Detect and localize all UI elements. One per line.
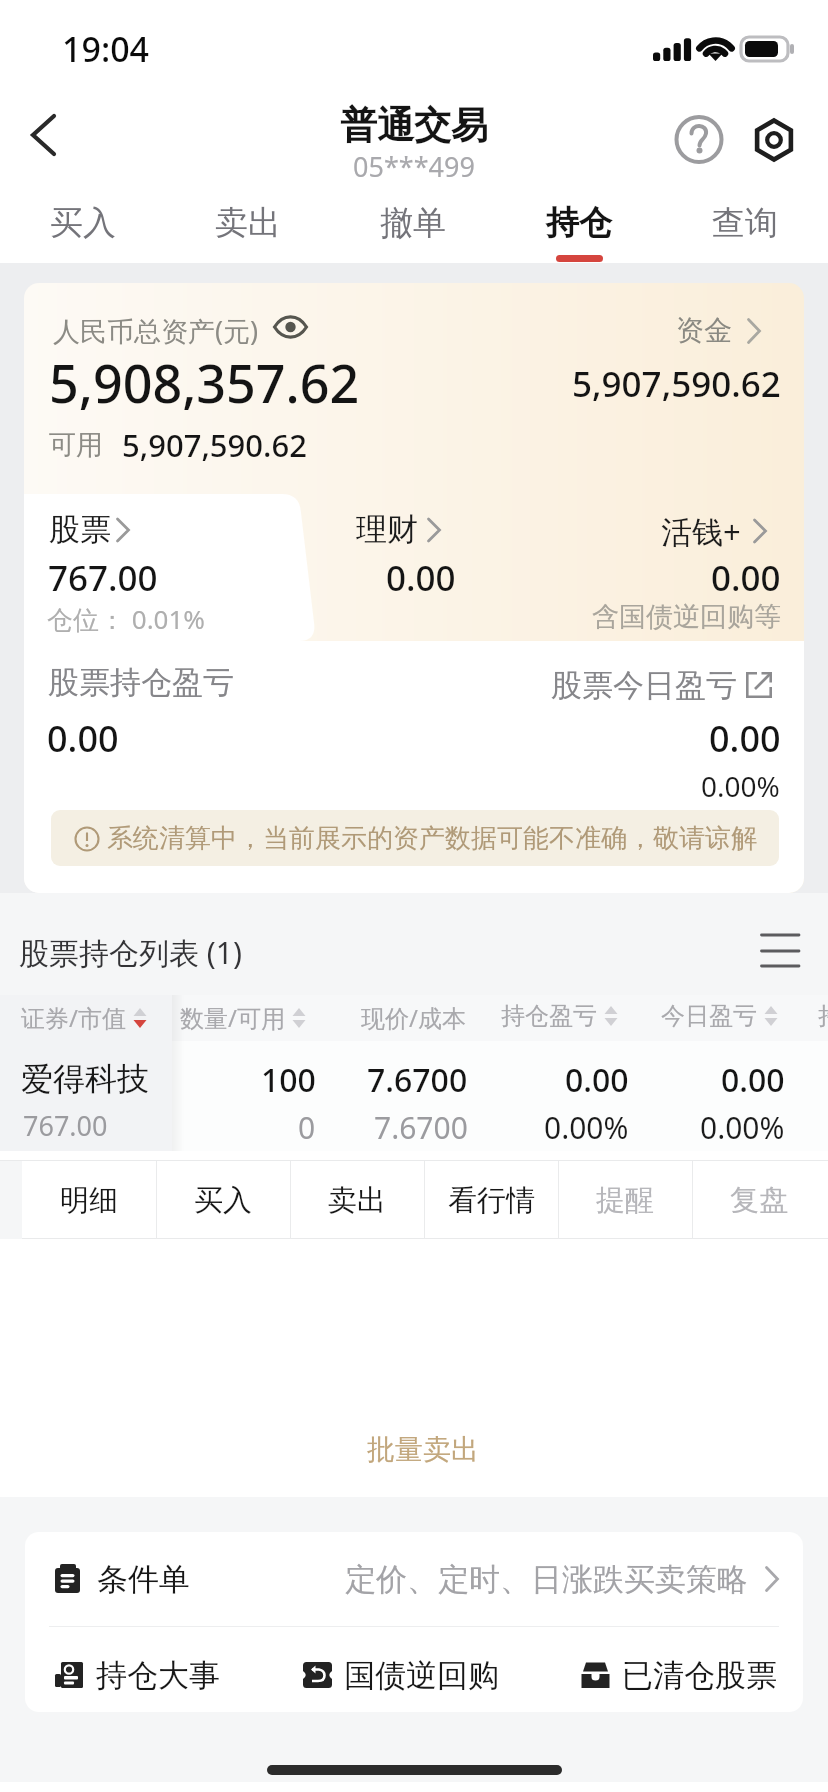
staticText: 7.6700 <box>367 1058 468 1102</box>
staticText: 0.00% <box>701 767 780 805</box>
button[interactable]: 卖出 <box>290 1161 424 1239</box>
staticText: 提醒 <box>596 1182 654 1219</box>
button[interactable]: 买入 <box>0 190 165 263</box>
staticText: 今日盈亏 <box>661 1001 757 1031</box>
staticText: 持仓大事 <box>96 1656 220 1695</box>
staticText: 定价、定时、日涨跌买卖策略 <box>345 1560 748 1599</box>
staticText: 查询 <box>712 202 778 244</box>
staticText: 0.00 <box>721 1058 785 1102</box>
staticText: 5,907,590.62 <box>122 424 307 466</box>
button[interactable]: 复盘 <box>692 1161 826 1239</box>
staticText: 19:04 <box>62 26 150 72</box>
button[interactable]: 看行情 <box>424 1161 558 1239</box>
staticText: 5,907,590.62 <box>572 360 781 408</box>
button[interactable]: Settings <box>744 110 804 170</box>
staticText: 持仓盈亏 <box>501 1001 597 1031</box>
staticText: 复盘 <box>730 1182 788 1219</box>
button[interactable]: 批量卖出 <box>9 1426 828 1472</box>
staticText: 股票 <box>49 510 111 549</box>
staticText: 05***499 <box>353 148 475 185</box>
staticText: 数量/可用 <box>180 1001 285 1034</box>
button[interactable]: 现价/成本 <box>361 1001 466 1034</box>
staticText: 卖出 <box>328 1182 386 1219</box>
staticText: 0.00 <box>565 1058 629 1102</box>
staticText: 撤单 <box>380 202 446 244</box>
staticText: 0.00% <box>544 1107 629 1148</box>
button[interactable]: 卖出 <box>165 190 330 263</box>
button[interactable]: Toggle balance visibility <box>273 315 309 340</box>
staticText: 0.00 <box>386 554 456 602</box>
staticText: 证券/市值 <box>21 1001 126 1034</box>
button[interactable]: 查询 <box>662 190 828 263</box>
button[interactable]: List options <box>748 918 812 984</box>
staticText: 0.00 <box>47 714 119 763</box>
staticText: 普通交易 <box>340 102 488 149</box>
staticText: 资金 <box>676 313 732 348</box>
staticText: 活钱+ <box>661 510 741 552</box>
staticText: 0.00 <box>711 554 781 602</box>
staticText: 含国债逆回购等 <box>592 600 781 634</box>
button[interactable]: 证券/市值 <box>21 1001 148 1034</box>
button[interactable]: 持仓 <box>496 190 662 263</box>
button[interactable]: 股票今日盈亏 <box>551 666 772 705</box>
staticText: 系统清算中，当前展示的资产数据可能不准确，敬请谅解 <box>107 822 757 855</box>
staticText: 100 <box>261 1058 316 1102</box>
button[interactable]: 持仓大事 <box>55 1656 220 1695</box>
button[interactable]: 买入 <box>156 1161 290 1239</box>
button[interactable]: 资金 <box>676 313 762 348</box>
staticText: 已清仓股票 <box>622 1656 777 1695</box>
staticText: 爱得科技 <box>21 1059 149 1099</box>
staticText: 767.00 <box>48 554 158 602</box>
staticText: 0 <box>298 1107 316 1148</box>
button[interactable]: 股票 <box>49 510 131 549</box>
button[interactable]: 已清仓股票 <box>581 1656 777 1695</box>
staticText: 股票持仓盈亏 <box>48 663 234 702</box>
staticText: 0.00 <box>709 714 781 763</box>
button[interactable]: 今日盈亏 <box>661 1001 779 1031</box>
staticText: 人民币总资产(元) <box>53 312 259 349</box>
staticText: 买入 <box>50 202 116 244</box>
button[interactable]: 撤单 <box>330 190 496 263</box>
staticText: 卖出 <box>215 202 281 244</box>
staticText: 7.6700 <box>374 1107 468 1148</box>
staticText: 批量卖出 <box>367 1432 479 1467</box>
button[interactable]: 活钱+ <box>661 510 768 552</box>
staticText: 0.00% <box>700 1107 785 1148</box>
staticText: 理财 <box>356 510 418 549</box>
button[interactable]: 提醒 <box>558 1161 692 1239</box>
button[interactable]: 明细 <box>22 1161 156 1239</box>
staticText: 现价/成本 <box>361 1001 466 1034</box>
staticText: 买入 <box>194 1182 252 1219</box>
button[interactable]: 持仓盈亏 <box>501 1001 619 1031</box>
staticText: 股票今日盈亏 <box>551 666 737 705</box>
staticText: 条件单 <box>97 1560 190 1599</box>
staticText: 可用 <box>49 428 103 462</box>
staticText: 5,908,357.62 <box>49 347 360 418</box>
staticText: 明细 <box>60 1182 118 1219</box>
button[interactable]: 理财 <box>356 510 442 549</box>
button[interactable]: 数量/可用 <box>180 1001 307 1034</box>
button[interactable]: Help <box>669 110 729 170</box>
button[interactable]: 国债逆回购 <box>303 1656 499 1695</box>
staticText: 国债逆回购 <box>344 1656 499 1695</box>
button[interactable]: 条件单 <box>25 1532 803 1626</box>
staticText: 仓位： 0.01% <box>47 601 205 637</box>
staticText: 767.00 <box>23 1107 108 1144</box>
staticText: 持 <box>818 1001 828 1031</box>
button[interactable]: Back <box>14 109 74 169</box>
staticText: 持仓 <box>546 202 612 244</box>
staticText: 看行情 <box>448 1182 535 1219</box>
staticText: 股票持仓列表 (1) <box>19 932 242 973</box>
